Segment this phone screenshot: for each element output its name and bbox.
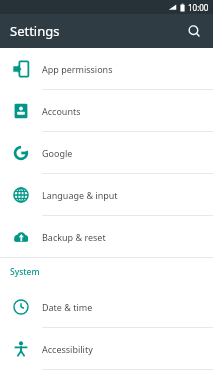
button[interactable]: Google [0,132,213,173]
staticText: Backup & reset [42,231,106,243]
button[interactable]: Search [181,18,207,44]
staticText: Accessibility [42,343,93,355]
staticText: Accounts [42,105,81,117]
staticText: Google [42,147,73,159]
staticText: Language & input [42,189,118,201]
staticText: System [10,266,40,278]
button[interactable]: Accounts [0,90,213,131]
button[interactable]: Date & time [0,286,213,327]
button[interactable]: App permissions [0,48,213,89]
button[interactable]: Language & input [0,174,213,215]
staticText: Date & time [42,301,93,313]
staticText: App permissions [42,63,113,75]
staticText: Settings [10,22,60,40]
staticText: 10:00 [188,2,209,13]
button[interactable]: Backup & reset [0,216,213,257]
button[interactable]: Accessibility [0,328,213,369]
